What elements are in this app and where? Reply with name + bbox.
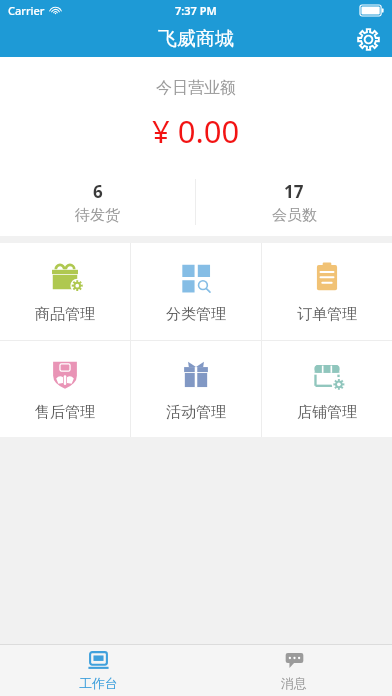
button[interactable]: 活动管理 xyxy=(131,341,261,437)
button[interactable]: 6 xyxy=(0,168,195,236)
staticText: 工作台 xyxy=(79,675,118,691)
staticText: 17 xyxy=(284,180,304,203)
staticText: 店铺管理 xyxy=(297,403,357,422)
staticText: 会员数 xyxy=(272,206,317,225)
button[interactable]: 17 xyxy=(196,168,392,236)
staticText: 消息 xyxy=(281,675,307,691)
staticText: ¥ 0.00 xyxy=(152,110,240,152)
staticText: 活动管理 xyxy=(166,403,226,422)
staticText: 飞威商城 xyxy=(158,27,234,51)
button[interactable]: Settings xyxy=(350,21,386,57)
staticText: Carrier xyxy=(8,3,45,18)
button[interactable]: 商品管理 xyxy=(0,243,130,340)
staticText: 6 xyxy=(93,180,103,203)
button[interactable]: 工作台 xyxy=(0,645,196,696)
staticText: 商品管理 xyxy=(35,305,95,324)
button[interactable]: 店铺管理 xyxy=(262,341,392,437)
button[interactable]: 分类管理 xyxy=(131,243,261,340)
staticText: 分类管理 xyxy=(166,305,226,324)
staticText: 今日营业额 xyxy=(156,78,236,98)
button[interactable]: 售后管理 xyxy=(0,341,130,437)
staticText: 订单管理 xyxy=(297,305,357,324)
staticText: 待发货 xyxy=(75,206,120,225)
staticText: 售后管理 xyxy=(35,403,95,422)
button[interactable]: 订单管理 xyxy=(262,243,392,340)
button[interactable]: 消息 xyxy=(196,645,392,696)
staticText: 7:37 PM xyxy=(175,3,217,18)
